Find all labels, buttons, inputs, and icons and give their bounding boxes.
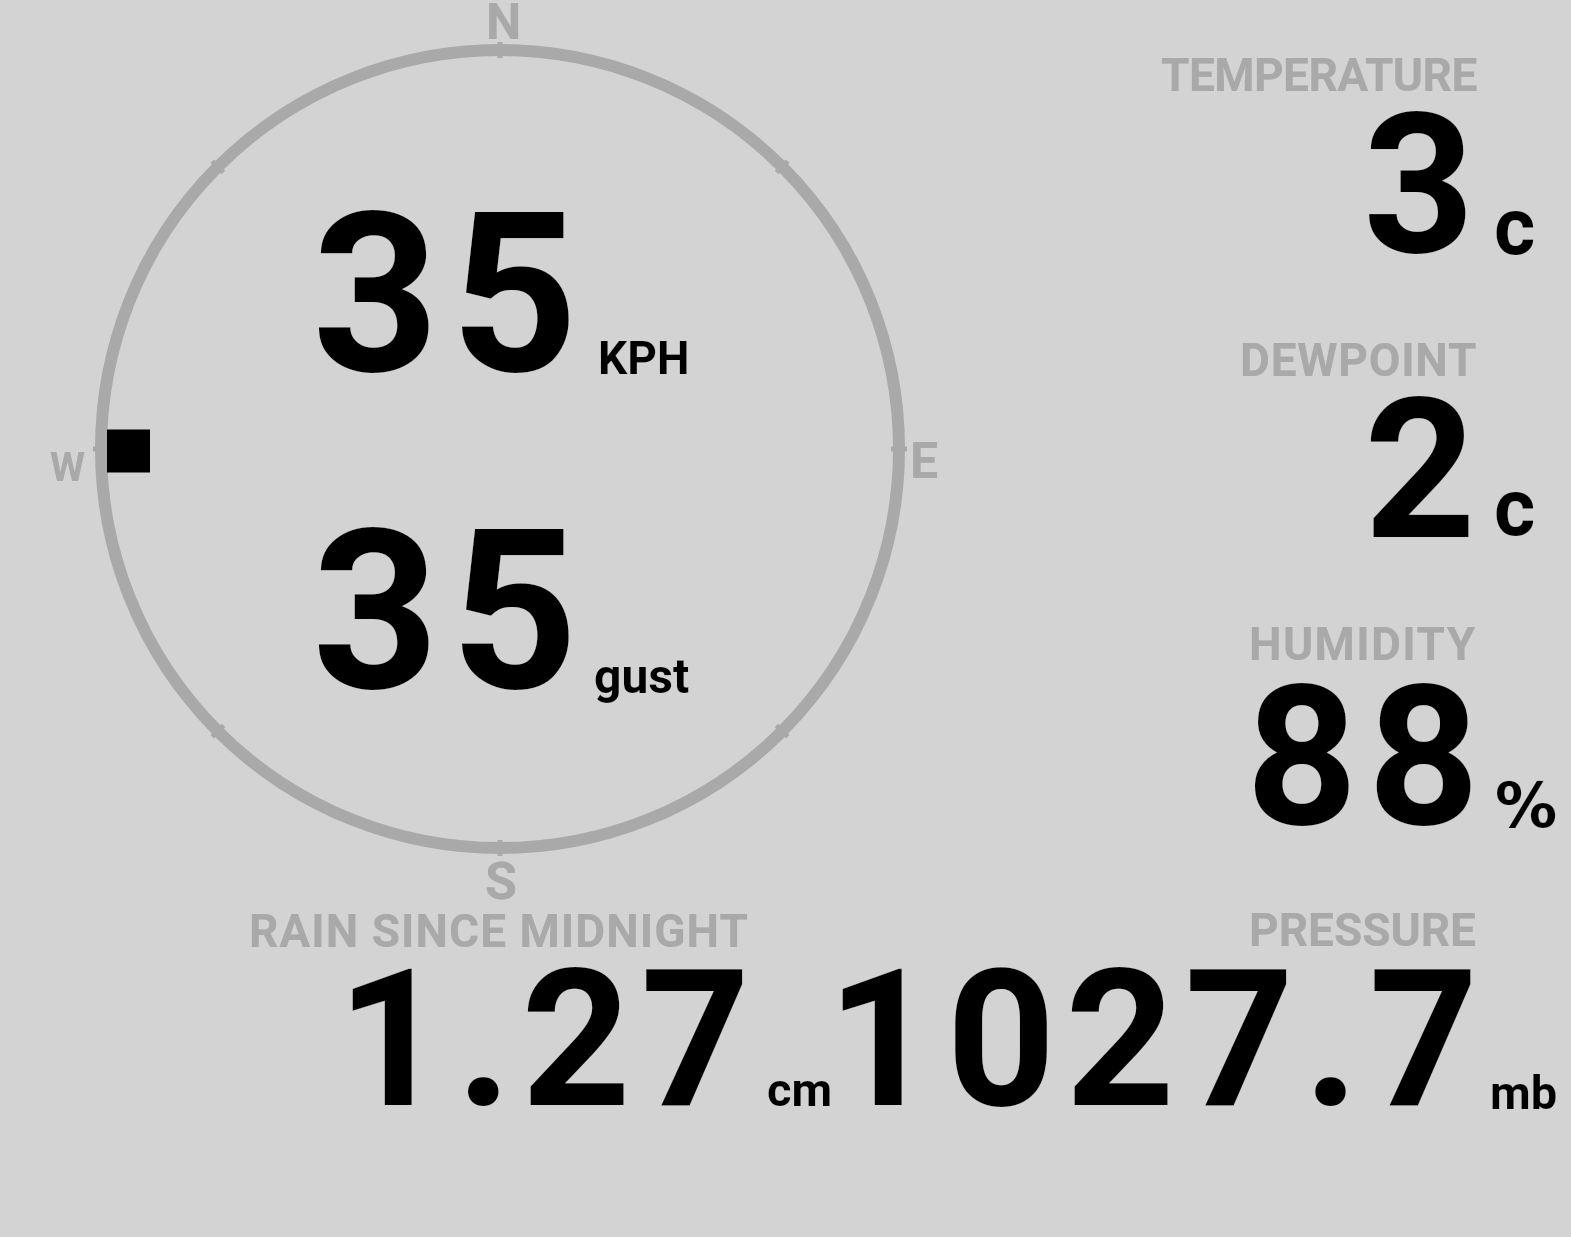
staticText: mb bbox=[1490, 1065, 1558, 1120]
staticText: c bbox=[1494, 462, 1536, 555]
staticText: KPH bbox=[598, 331, 690, 385]
staticText: W bbox=[50, 444, 85, 491]
staticText: S bbox=[485, 851, 517, 912]
staticText: 1027.7 bbox=[827, 928, 1488, 1152]
staticText: % bbox=[1495, 769, 1558, 841]
staticText: c bbox=[1494, 181, 1536, 274]
staticText: N bbox=[486, 0, 522, 52]
staticText: TEMPERATURE bbox=[1161, 48, 1477, 102]
staticText: cm bbox=[767, 1062, 833, 1117]
staticText: 35 bbox=[312, 482, 589, 742]
button[interactable]: Rain since midnight bbox=[240, 900, 840, 1120]
staticText: E bbox=[910, 432, 939, 491]
button[interactable]: Wind speed and direction bbox=[96, 45, 904, 853]
staticText: RAIN SINCE MIDNIGHT bbox=[249, 904, 749, 958]
staticText: 1.27 bbox=[337, 928, 760, 1152]
staticText: PRESSURE bbox=[1249, 903, 1476, 957]
button[interactable]: Dew point bbox=[1140, 325, 1560, 555]
staticText: HUMIDITY bbox=[1249, 617, 1477, 671]
staticText: 3 bbox=[1363, 71, 1475, 300]
button[interactable]: Temperature bbox=[1140, 40, 1560, 270]
button[interactable]: Pressure bbox=[840, 900, 1560, 1120]
staticText: 88 bbox=[1246, 643, 1490, 872]
staticText: DEWPOINT bbox=[1240, 333, 1478, 387]
staticText: 35 bbox=[312, 165, 589, 425]
staticText: 2 bbox=[1364, 356, 1476, 585]
staticText: gust bbox=[594, 648, 690, 704]
button[interactable]: Humidity bbox=[1140, 610, 1560, 840]
